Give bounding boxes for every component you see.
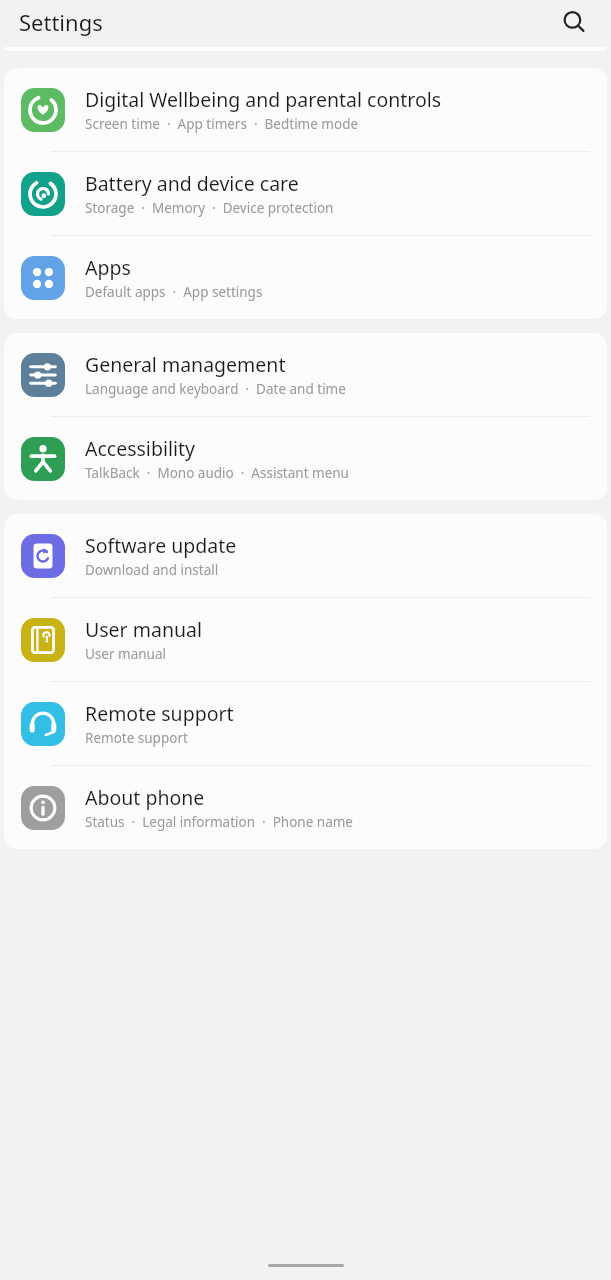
staticText: Battery and device care xyxy=(85,170,299,197)
staticText: Status · Legal information · Phone name xyxy=(85,813,353,831)
staticText: Remote support xyxy=(85,700,234,727)
button[interactable]: Apps xyxy=(4,236,607,319)
button[interactable]: Battery and device care xyxy=(4,152,607,236)
staticText: About phone xyxy=(85,784,205,811)
staticText: User manual xyxy=(85,616,202,643)
staticText: TalkBack · Mono audio · Assistant menu xyxy=(85,464,349,482)
staticText: Screen time · App timers · Bedtime mode xyxy=(85,115,359,133)
staticText: Storage · Memory · Device protection xyxy=(85,199,334,217)
staticText: Language and keyboard · Date and time xyxy=(85,380,346,398)
button[interactable]: Search xyxy=(557,5,591,39)
staticText: Settings xyxy=(19,7,103,37)
button[interactable]: Software update xyxy=(4,514,607,598)
staticText: Digital Wellbeing and parental controls xyxy=(85,86,442,113)
staticText: User manual xyxy=(85,645,166,663)
button[interactable]: General management xyxy=(4,333,607,417)
button[interactable]: User manual xyxy=(4,598,607,682)
button[interactable]: About phone xyxy=(4,766,607,849)
button[interactable]: Accessibility xyxy=(4,417,607,500)
button[interactable]: Remote support xyxy=(4,682,607,766)
staticText: Remote support xyxy=(85,729,188,747)
staticText: Apps xyxy=(85,254,131,281)
staticText: Software update xyxy=(85,532,237,559)
staticText: Accessibility xyxy=(85,435,195,462)
button[interactable]: Digital Wellbeing and parental controls xyxy=(4,68,607,152)
staticText: General management xyxy=(85,351,286,378)
staticText: Download and install xyxy=(85,561,219,579)
staticText: Default apps · App settings xyxy=(85,283,263,301)
